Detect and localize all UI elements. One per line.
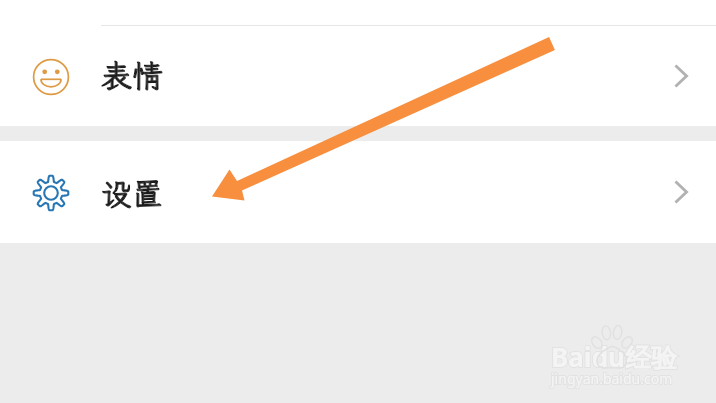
staticText: jingyan.baidu.com xyxy=(551,369,673,388)
staticText: 表情 xyxy=(101,55,163,96)
staticText: 表情 xyxy=(101,55,163,96)
staticText: 设置 xyxy=(101,173,163,214)
button[interactable]: 表情 xyxy=(0,26,716,126)
staticText: jingyan.baidu.com xyxy=(551,369,673,388)
button[interactable]: 设置 xyxy=(0,141,716,243)
staticText: 设置 xyxy=(101,173,163,214)
staticText: Baidu经验 xyxy=(551,339,677,375)
staticText: Baidu经验 xyxy=(551,339,677,375)
